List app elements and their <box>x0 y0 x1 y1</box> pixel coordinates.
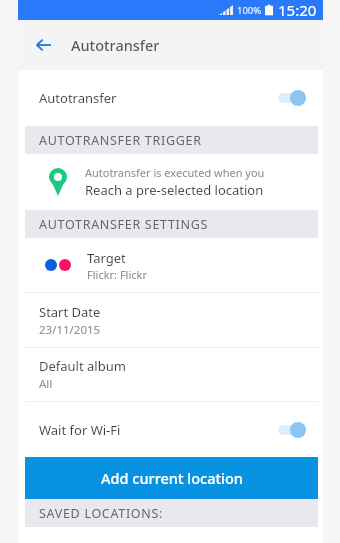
button[interactable]: Autotransfer <box>18 70 323 126</box>
staticText: Add current location <box>101 468 243 488</box>
staticText: Autotransfer <box>39 89 117 107</box>
button[interactable]: Wait for Wi-Fi <box>18 402 323 457</box>
staticText: AUTOTRANSFER SETTINGS <box>39 216 209 233</box>
button[interactable]: Back <box>29 31 57 59</box>
button[interactable]: Start Date <box>18 293 323 347</box>
staticText: Flickr: Flickr <box>87 267 147 282</box>
button[interactable]: Add current location <box>25 457 318 499</box>
staticText: Default album <box>39 357 126 375</box>
button[interactable]: Autotransfer is executed when you <box>18 154 323 210</box>
staticText: 15:20 <box>278 0 317 20</box>
staticText: Start Date <box>39 303 101 321</box>
staticText: 23/11/2015 <box>39 322 101 338</box>
staticText: Reach a pre-selected location <box>85 181 264 199</box>
staticText: AUTOTRANSFER TRIGGER <box>39 132 202 149</box>
staticText: Autotransfer <box>71 35 160 55</box>
button[interactable]: Default album <box>18 348 323 401</box>
staticText: Target <box>87 249 126 267</box>
button[interactable]: Target <box>18 238 323 292</box>
staticText: Autotransfer is executed when you <box>85 165 265 180</box>
staticText: 100% <box>237 4 262 17</box>
staticText: Wait for Wi-Fi <box>39 421 121 439</box>
staticText: SAVED LOCATIONS: <box>39 505 164 522</box>
staticText: All <box>39 376 53 392</box>
